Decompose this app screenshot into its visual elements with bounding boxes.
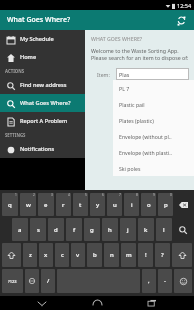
- button[interactable]: u: [107, 193, 122, 216]
- button[interactable]: r: [56, 193, 71, 216]
- staticText: l: [163, 226, 165, 234]
- button[interactable]: i: [124, 193, 139, 216]
- button[interactable]: Recents: [139, 296, 165, 310]
- button[interactable]: j: [120, 218, 136, 241]
- button[interactable]: Shift: [172, 243, 192, 267]
- button[interactable]: b: [87, 243, 102, 267]
- staticText: r: [62, 201, 65, 209]
- button[interactable]: Emoji: [174, 269, 192, 293]
- button[interactable]: v: [71, 243, 85, 267]
- staticText: 7: [119, 193, 121, 197]
- button[interactable]: Home: [84, 296, 110, 310]
- button[interactable]: My Schedule: [0, 30, 85, 48]
- button[interactable]: k: [138, 218, 154, 241]
- button[interactable]: /: [41, 269, 55, 293]
- staticText: b: [93, 251, 97, 259]
- button[interactable]: e: [38, 193, 54, 216]
- button[interactable]: n: [104, 243, 119, 267]
- button[interactable]: o: [141, 193, 156, 216]
- button[interactable]: a: [12, 218, 28, 241]
- button[interactable]: Back: [29, 296, 55, 310]
- button[interactable]: l: [156, 218, 172, 241]
- button[interactable]: c: [55, 243, 69, 267]
- staticText: 6: [102, 193, 104, 197]
- staticText: s: [37, 226, 40, 234]
- staticText: Envelope (without pl..: [119, 133, 172, 140]
- staticText: w: [26, 201, 31, 209]
- staticText: Ski poles: [119, 165, 141, 172]
- staticText: Notifications: [20, 145, 55, 153]
- staticText: What Goes Where?: [7, 15, 71, 25]
- button[interactable]: h: [102, 218, 118, 241]
- button[interactable]: What Goes Where?: [0, 94, 85, 112]
- button[interactable]: !: [138, 243, 153, 267]
- button[interactable]: Shift: [2, 243, 21, 267]
- button[interactable]: q: [2, 193, 18, 216]
- button[interactable]: Plastic pail: [113, 96, 194, 112]
- button[interactable]: Home: [0, 48, 85, 66]
- button[interactable]: Plates (plastic): [113, 112, 194, 128]
- staticText: /: [47, 277, 50, 285]
- button[interactable]: g: [84, 218, 100, 241]
- staticText: My Schedule: [20, 35, 54, 43]
- staticText: x: [44, 251, 48, 259]
- button[interactable]: y: [90, 193, 105, 216]
- staticText: h: [108, 226, 112, 234]
- button[interactable]: Plas: [116, 68, 189, 80]
- staticText: k: [144, 226, 148, 234]
- staticText: i: [131, 201, 133, 209]
- button[interactable]: w: [20, 193, 36, 216]
- staticText: m: [126, 251, 132, 259]
- staticText: Home: [20, 53, 37, 61]
- button[interactable]: Notifications: [0, 140, 85, 158]
- staticText: j: [127, 226, 129, 234]
- staticText: f: [73, 226, 76, 234]
- staticText: g: [90, 226, 94, 234]
- button[interactable]: PL 7: [113, 80, 194, 96]
- button[interactable]: m: [121, 243, 136, 267]
- button[interactable]: s: [30, 218, 46, 241]
- staticText: 8: [136, 193, 138, 197]
- button[interactable]: p: [158, 193, 173, 216]
- button[interactable]: Refresh: [174, 13, 188, 27]
- button[interactable]: Envelope (with plasti..: [113, 144, 194, 160]
- button[interactable]: f: [66, 218, 82, 241]
- button[interactable]: Language: [25, 269, 39, 293]
- staticText: o: [147, 201, 151, 209]
- button[interactable]: ,: [142, 269, 156, 293]
- staticText: Please search for an item to dispose of:: [91, 54, 189, 61]
- staticText: !: [145, 251, 147, 259]
- staticText: WHAT GOES WHERE?: [91, 35, 143, 42]
- button[interactable]: Ski poles: [113, 160, 194, 176]
- staticText: Item:: [97, 71, 110, 78]
- button[interactable]: Delete: [175, 193, 192, 216]
- staticText: What Goes Where?: [20, 99, 71, 107]
- staticText: v: [76, 251, 80, 259]
- button[interactable]: Report A Problem: [0, 112, 85, 130]
- button[interactable]: z: [23, 243, 37, 267]
- button[interactable]: Envelope (without pl..: [113, 128, 194, 144]
- staticText: Plastic pail: [119, 101, 145, 108]
- staticText: 3: [51, 193, 53, 197]
- staticText: t: [79, 201, 82, 209]
- staticText: -: [164, 277, 166, 285]
- button[interactable]: Search: [174, 218, 192, 241]
- staticText: SETTINGS: [5, 132, 26, 138]
- button[interactable]: -: [158, 269, 172, 293]
- staticText: a: [18, 226, 22, 234]
- staticText: 4: [68, 193, 70, 197]
- button[interactable]: ?: [155, 243, 170, 267]
- button[interactable]: Find new address: [0, 76, 85, 94]
- staticText: z: [29, 251, 32, 259]
- staticText: Welcome to the Waste Sorting App.: [91, 47, 179, 54]
- staticText: 9: [153, 193, 155, 197]
- staticText: Plates (plastic): [119, 117, 154, 124]
- staticText: Find new address: [20, 81, 67, 89]
- staticText: 0: [170, 193, 172, 197]
- button[interactable]: x: [39, 243, 53, 267]
- button[interactable]: ?123: [2, 269, 23, 293]
- button[interactable]: t: [73, 193, 88, 216]
- button[interactable]: d: [48, 218, 64, 241]
